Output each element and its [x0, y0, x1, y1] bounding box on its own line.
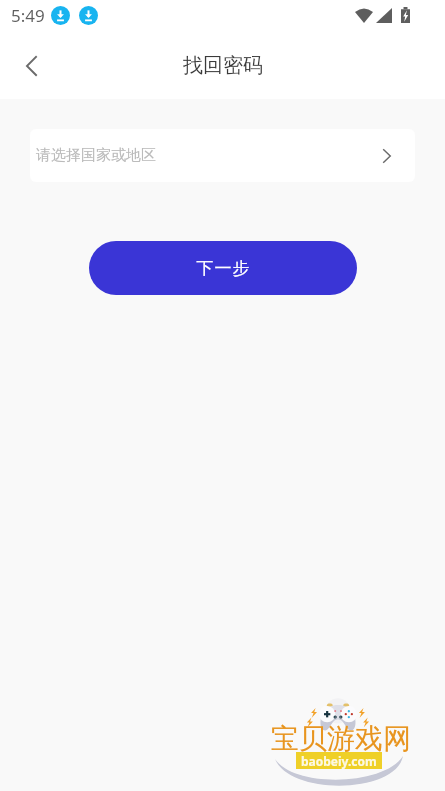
staticText: 找回密码 [183, 53, 263, 78]
staticText: 请选择国家或地区 [36, 146, 156, 165]
button[interactable]: 下一步 [89, 241, 357, 295]
button[interactable]: Back [8, 43, 54, 89]
staticText: 下一步 [196, 258, 250, 279]
staticText: 宝贝游戏网 [271, 721, 411, 756]
staticText: baobeiy.com [301, 753, 377, 769]
button[interactable]: 请选择国家或地区 [30, 129, 415, 182]
staticText: 5:49 [11, 4, 45, 27]
